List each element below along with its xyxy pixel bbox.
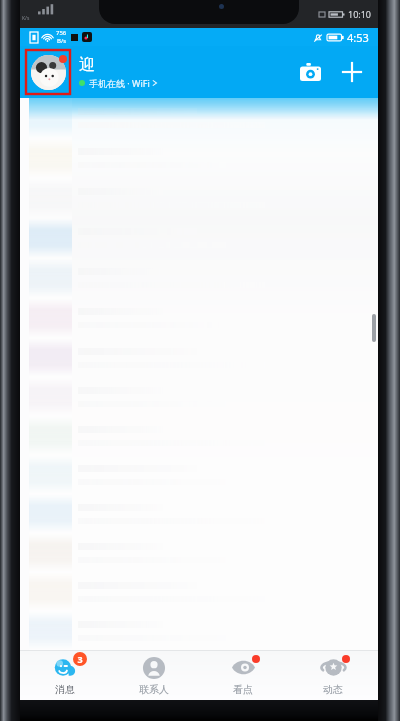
staticText: 动态 [323,683,343,696]
staticText: 消息 [55,683,75,696]
button[interactable]: Profile [26,50,70,94]
staticText: 看点 [233,683,253,696]
button[interactable] [20,258,378,298]
staticText: 迎 [79,55,95,75]
staticText: 4:53 [347,30,369,45]
button[interactable]: 3 [20,650,109,700]
staticText: B/s [57,37,67,45]
staticText: 联系人 [139,683,169,696]
button[interactable] [20,494,378,533]
button[interactable] [20,98,378,138]
button[interactable]: Add [330,50,374,94]
staticText: 756 [56,29,67,37]
button[interactable]: 联系人 [109,650,198,700]
button[interactable] [20,611,378,650]
button[interactable]: 看点 [198,650,288,700]
button[interactable]: Camera [290,52,330,92]
staticText: 手机在线 · WiFi [89,77,150,89]
button[interactable] [20,218,378,258]
button[interactable]: 迎 [79,55,290,89]
button[interactable] [20,338,378,377]
button[interactable] [20,533,378,572]
staticText: 10:10 [348,8,372,20]
button[interactable] [20,455,378,494]
button[interactable]: 动态 [288,650,378,700]
staticText: K/s [22,15,30,22]
staticText: 3 [77,653,83,665]
button[interactable] [20,298,378,338]
